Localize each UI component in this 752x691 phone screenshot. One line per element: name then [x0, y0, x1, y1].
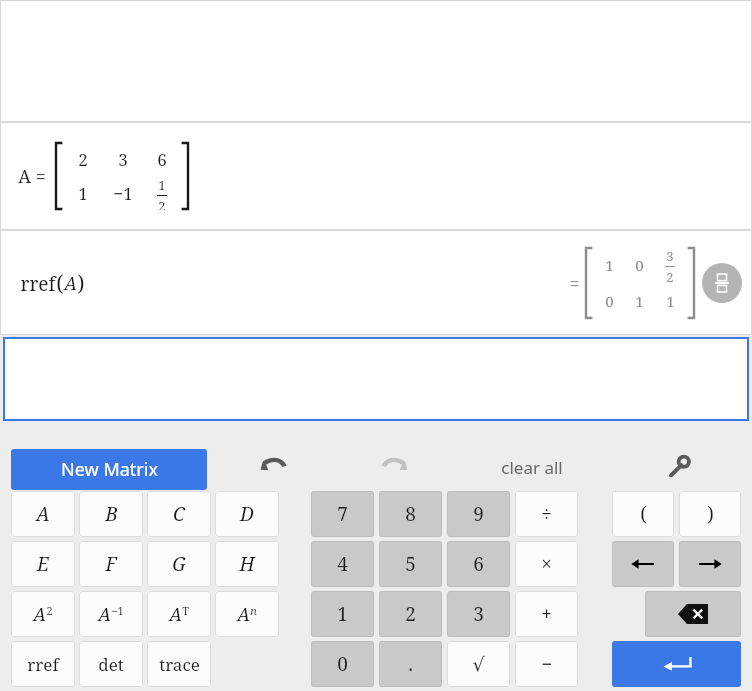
staticText: A — [64, 271, 77, 296]
staticText: 0 — [605, 291, 614, 311]
staticText: T — [182, 603, 189, 618]
button[interactable]: 8 — [379, 491, 442, 537]
button[interactable]: A — [11, 591, 75, 637]
staticText: A — [237, 602, 250, 627]
button[interactable]: Backspace — [645, 591, 741, 637]
staticText: D — [240, 501, 254, 527]
button[interactable]: New Matrix — [11, 449, 207, 490]
button[interactable]: − — [515, 641, 578, 687]
button[interactable]: rref — [0, 230, 752, 335]
staticText: + — [541, 601, 552, 627]
staticText: ( — [640, 501, 647, 527]
button[interactable]: F — [79, 541, 143, 587]
staticText: √ — [472, 653, 485, 675]
button[interactable]: + — [515, 591, 578, 637]
staticText: A — [33, 602, 46, 627]
staticText: 7 — [337, 501, 348, 527]
staticText: 2 — [666, 268, 674, 283]
staticText: A = — [18, 164, 46, 189]
button[interactable]: clear all — [480, 445, 584, 489]
button[interactable]: 7 — [311, 491, 374, 537]
staticText: H — [239, 551, 255, 577]
staticText: . — [408, 651, 413, 677]
button[interactable]: Enter — [612, 641, 741, 687]
staticText: 1 — [635, 291, 644, 311]
button[interactable]: B — [79, 491, 143, 537]
staticText: B — [105, 501, 118, 527]
staticText: 5 — [405, 551, 416, 577]
button[interactable]: 5 — [379, 541, 442, 587]
staticText: ÷ — [541, 501, 552, 527]
staticText: rref — [20, 271, 56, 297]
button[interactable]: Redo — [372, 445, 416, 489]
button[interactable]: . — [379, 641, 442, 687]
staticText: G — [172, 551, 186, 577]
staticText: ) — [77, 269, 85, 298]
button[interactable]: ) — [679, 491, 741, 537]
button[interactable]: 9 — [447, 491, 510, 537]
staticText: C — [173, 501, 185, 527]
staticText: rref — [27, 653, 59, 676]
button[interactable]: Settings — [658, 446, 700, 488]
staticText: A — [98, 602, 111, 627]
staticText: 2 — [158, 197, 166, 210]
button[interactable]: A — [147, 591, 211, 637]
staticText: det — [98, 653, 124, 676]
staticText: −1 — [113, 182, 133, 205]
button[interactable]: 0 — [311, 641, 374, 687]
button[interactable]: E — [11, 541, 75, 587]
button[interactable]: 3 — [447, 591, 510, 637]
button[interactable]: ( — [612, 491, 674, 537]
staticText: 1 — [78, 182, 88, 205]
button[interactable]: Toggle fraction — [702, 263, 742, 303]
staticText: 2 — [46, 603, 53, 618]
staticText: 3 — [666, 247, 674, 265]
button[interactable]: trace — [147, 641, 211, 687]
button[interactable]: C — [147, 491, 211, 537]
button[interactable]: A — [79, 591, 143, 637]
button[interactable]: 2 — [379, 591, 442, 637]
staticText: 2 — [405, 601, 416, 627]
button[interactable]: Right — [679, 541, 741, 587]
staticText: 0 — [635, 255, 644, 275]
staticText: 1 — [666, 291, 675, 311]
staticText: 6 — [473, 551, 484, 577]
button[interactable] — [3, 337, 749, 421]
staticText: 9 — [473, 501, 484, 527]
staticText: ) — [707, 501, 714, 527]
staticText: 2 — [78, 148, 88, 171]
staticText: 0 — [337, 651, 348, 677]
button[interactable]: A — [215, 591, 279, 637]
staticText: F — [105, 551, 117, 577]
button[interactable]: A = — [0, 122, 752, 230]
staticText: − — [541, 651, 553, 677]
button[interactable]: G — [147, 541, 211, 587]
button[interactable]: Left — [612, 541, 674, 587]
button[interactable]: D — [215, 491, 279, 537]
staticText: A — [36, 501, 50, 527]
staticText: 3 — [473, 601, 484, 627]
button[interactable]: rref — [11, 641, 75, 687]
staticText: 3 — [118, 148, 128, 171]
button[interactable]: 4 — [311, 541, 374, 587]
button[interactable]: 1 — [311, 591, 374, 637]
staticText: = — [569, 271, 580, 296]
button[interactable]: ÷ — [515, 491, 578, 537]
button[interactable]: Undo — [252, 445, 296, 489]
staticText: 6 — [157, 148, 167, 171]
staticText: clear all — [501, 456, 563, 479]
button[interactable]: det — [79, 641, 143, 687]
staticText: × — [541, 551, 552, 577]
staticText: New Matrix — [61, 457, 158, 482]
button[interactable]: √ — [447, 641, 510, 687]
staticText: 1 — [605, 255, 614, 275]
button[interactable]: A — [11, 491, 75, 537]
staticText: ( — [56, 269, 64, 298]
staticText: trace — [159, 653, 200, 676]
button[interactable]: × — [515, 541, 578, 587]
staticText: 4 — [337, 551, 348, 577]
button[interactable]: 6 — [447, 541, 510, 587]
button[interactable]: H — [215, 541, 279, 587]
staticText: E — [37, 551, 49, 577]
staticText: 1 — [337, 601, 348, 627]
